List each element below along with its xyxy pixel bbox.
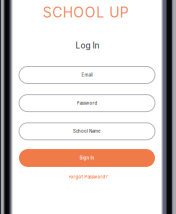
button[interactable]: School Name: [19, 123, 155, 140]
staticText: Password: [76, 100, 97, 106]
staticText: Forgot Password?: [68, 174, 107, 180]
button[interactable]: Forgot Password?: [68, 172, 107, 181]
staticText: Email: [81, 72, 92, 78]
staticText: School Name: [73, 129, 101, 134]
staticText: SCHOOL UP: [43, 4, 129, 21]
button[interactable]: Password: [19, 95, 155, 112]
button[interactable]: Email: [19, 66, 155, 83]
staticText: Log In: [75, 40, 99, 50]
staticText: Sign In: [79, 155, 94, 161]
button[interactable]: Sign In: [19, 149, 155, 167]
